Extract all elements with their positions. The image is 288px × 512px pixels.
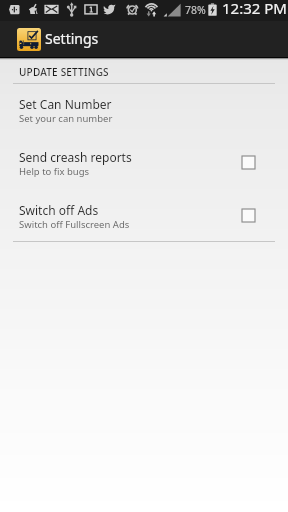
staticText: Send creash reports xyxy=(19,149,132,165)
button[interactable]: Set Can Number xyxy=(0,83,288,136)
button[interactable]: Send creash reports xyxy=(0,136,288,189)
staticText: 12:32 PM xyxy=(222,0,287,18)
button[interactable]: Toggle setting xyxy=(242,209,255,222)
staticText: Switch off Fullscreen Ads xyxy=(19,218,130,231)
button[interactable]: Toggle setting xyxy=(242,156,255,169)
staticText: Settings xyxy=(45,29,99,48)
staticText: 78% xyxy=(185,3,206,17)
staticText: UPDATE SETTINGS xyxy=(19,65,109,79)
staticText: Help to fix bugs xyxy=(19,165,90,178)
staticText: Set Can Number xyxy=(19,96,112,112)
staticText: Switch off Ads xyxy=(19,202,99,218)
button[interactable]: Switch off Ads xyxy=(0,189,288,242)
staticText: Set your can number xyxy=(19,112,113,125)
